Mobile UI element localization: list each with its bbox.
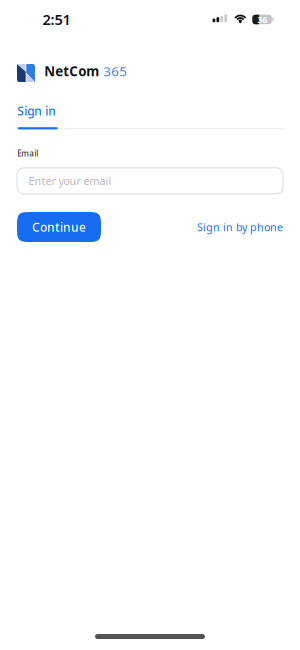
staticText: Continue	[32, 219, 86, 235]
staticText: 36	[257, 13, 267, 26]
button[interactable]: Sign in by phone	[197, 220, 283, 234]
staticText: Email	[17, 148, 38, 159]
button[interactable]: Enter your email	[17, 168, 283, 194]
staticText: 365	[103, 62, 127, 80]
staticText: NetCom	[44, 62, 99, 80]
staticText: Sign in by phone	[197, 220, 283, 234]
staticText: 2:51	[42, 9, 70, 29]
button[interactable]: Continue	[17, 212, 101, 242]
staticText: Sign in	[17, 103, 56, 119]
staticText: Enter your email	[28, 174, 111, 188]
